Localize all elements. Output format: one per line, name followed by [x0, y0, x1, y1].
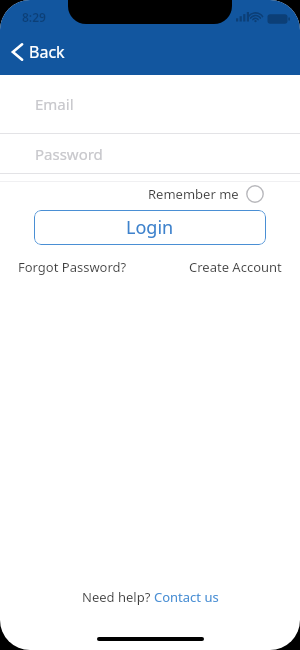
button[interactable]: Email [0, 75, 300, 133]
staticText: Password [35, 144, 103, 164]
button[interactable]: Login [34, 210, 266, 245]
staticText: Need help? [82, 588, 154, 606]
staticText: Login [126, 215, 174, 240]
button[interactable]: Remember me [140, 183, 266, 205]
staticText: Contact us [154, 588, 219, 606]
button[interactable]: Forgot Password? [18, 254, 127, 280]
staticText: Remember me [148, 185, 239, 203]
staticText: 8:29 [22, 9, 46, 25]
staticText: Back [29, 41, 65, 63]
button[interactable]: Back [6, 36, 71, 68]
button[interactable]: Password [0, 134, 300, 173]
staticText: Email [35, 94, 74, 114]
staticText: Create Account [189, 258, 282, 276]
button[interactable]: Contact us [154, 585, 219, 609]
staticText: Forgot Password? [18, 258, 127, 276]
button[interactable]: Create Account [189, 254, 282, 280]
